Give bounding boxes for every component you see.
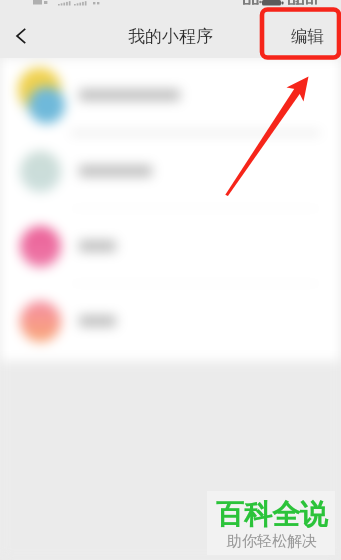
button[interactable] [0,58,341,132]
button[interactable] [0,134,341,208]
button[interactable]: 编辑 [279,16,341,57]
staticText: 我的小程序 [128,26,213,47]
staticText: 助你轻松解决 [227,532,317,551]
button[interactable] [0,284,341,358]
staticText: 编辑 [291,26,324,47]
button[interactable]: Back [1,16,41,56]
staticText: 百科全说 [216,497,328,532]
button[interactable] [0,209,341,283]
